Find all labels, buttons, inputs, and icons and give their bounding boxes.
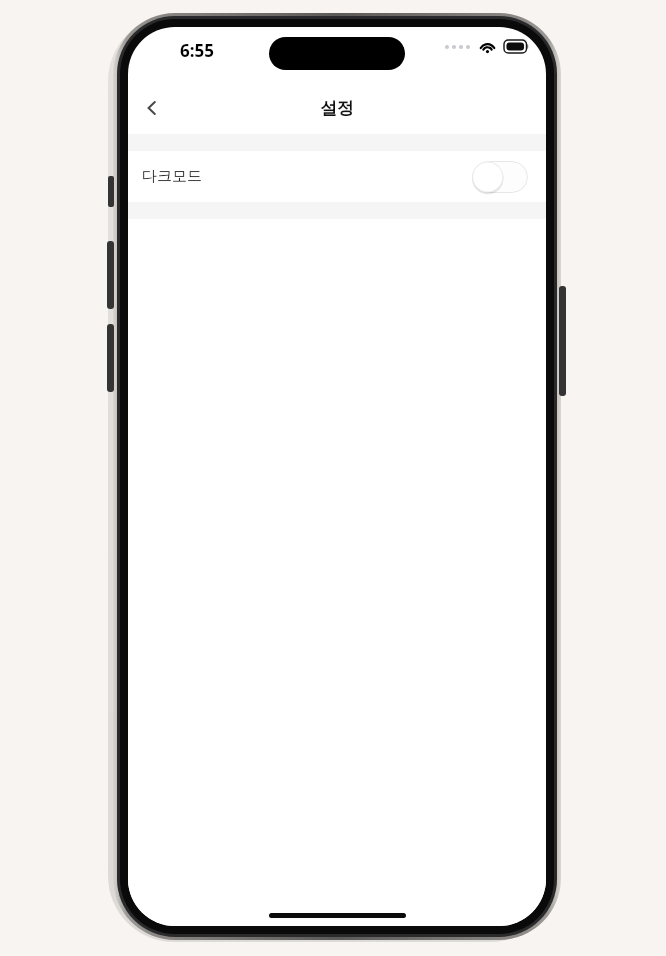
staticText: 6:55 <box>180 39 214 62</box>
staticText: 다크모드 <box>142 167 202 186</box>
button[interactable]: 다크모드 <box>128 151 546 202</box>
button[interactable]: Back <box>130 86 174 130</box>
button[interactable]: Dark mode toggle, off <box>472 161 528 193</box>
staticText: 설정 <box>320 98 354 119</box>
